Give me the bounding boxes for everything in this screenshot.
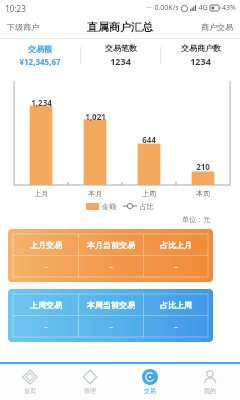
staticText: 直属商户汇总 xyxy=(87,20,153,34)
staticText: 上周交易 xyxy=(30,300,62,310)
staticText: 644 xyxy=(142,134,156,145)
staticText: 1,021 xyxy=(85,111,106,122)
staticText: 上月交易 xyxy=(30,240,62,250)
staticText: 交易商户数 xyxy=(181,43,221,53)
button[interactable]: 管理 xyxy=(60,364,120,400)
button[interactable]: 交易额 xyxy=(0,39,80,71)
staticText: – xyxy=(44,321,48,332)
staticText: 下级商户 xyxy=(7,22,39,32)
staticText: 占比 xyxy=(140,202,154,211)
staticText: 交易 xyxy=(144,387,156,395)
staticText: – xyxy=(174,321,178,332)
staticText: 本周当前交易 xyxy=(87,300,135,310)
staticText: 本月当前交易 xyxy=(87,240,135,250)
staticText: 210 xyxy=(196,161,210,172)
staticText: 上周 xyxy=(142,189,156,198)
staticText: – xyxy=(174,261,178,272)
staticText: 管理 xyxy=(84,387,96,395)
staticText: 交易额 xyxy=(28,44,52,54)
staticText: ··· xyxy=(146,3,152,13)
staticText: 占比上周 xyxy=(160,300,192,310)
staticText: 首页 xyxy=(24,387,36,395)
staticText: 1234 xyxy=(190,55,211,67)
button[interactable]: 下级商户 xyxy=(0,19,46,35)
staticText: – xyxy=(109,321,113,332)
button[interactable]: 我的 xyxy=(180,364,240,400)
button[interactable]: 商户交易 xyxy=(194,19,240,35)
staticText: 金额 xyxy=(102,202,116,211)
staticText: 商户交易 xyxy=(201,22,233,32)
staticText: 43% xyxy=(222,3,236,13)
staticText: 占比上月 xyxy=(160,240,192,250)
button[interactable]: 上月交易 xyxy=(8,229,213,282)
staticText: 我的 xyxy=(204,387,216,395)
staticText: 上月 xyxy=(34,189,48,198)
staticText: 4G xyxy=(198,3,208,13)
staticText: 0.00K/s xyxy=(154,3,179,13)
button[interactable]: 上周交易 xyxy=(8,289,213,342)
staticText: 1,234 xyxy=(31,97,52,108)
staticText: ¥12,345,67 xyxy=(19,56,61,67)
button[interactable]: 首页 xyxy=(0,364,60,400)
staticText: 本月 xyxy=(88,189,102,198)
staticText: 交易笔数 xyxy=(105,43,137,53)
button[interactable]: 交易 xyxy=(120,364,180,400)
staticText: 本周 xyxy=(196,189,210,198)
staticText: – xyxy=(44,261,48,272)
staticText: 1234 xyxy=(110,55,131,67)
staticText: 单位：元 xyxy=(182,215,210,224)
button[interactable]: 交易商户数 xyxy=(161,39,240,71)
staticText: 10:23 xyxy=(5,3,26,14)
button[interactable]: 交易笔数 xyxy=(81,39,160,71)
staticText: – xyxy=(109,261,113,272)
